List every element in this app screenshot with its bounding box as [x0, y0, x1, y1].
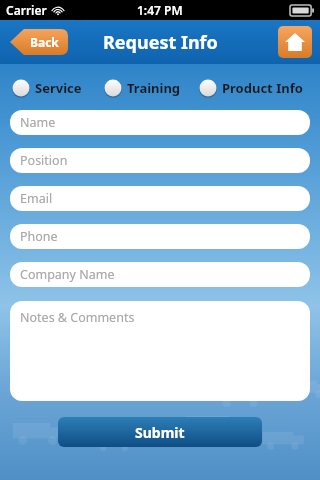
staticText: Product Info: [222, 79, 303, 97]
button[interactable]: Product Info: [199, 79, 303, 97]
button[interactable]: Position: [10, 148, 310, 173]
button[interactable]: Service: [12, 79, 82, 97]
staticText: Phone: [20, 228, 58, 245]
staticText: Submit: [135, 423, 185, 442]
button[interactable]: Submit: [58, 417, 262, 447]
staticText: Back: [30, 34, 59, 50]
button[interactable]: Company Name: [10, 262, 310, 287]
button[interactable]: Back: [10, 29, 68, 55]
button[interactable]: Training: [104, 79, 181, 97]
staticText: Email: [20, 190, 53, 207]
staticText: Service: [35, 79, 82, 97]
staticText: Notes & Comments: [20, 309, 135, 326]
staticText: Name: [20, 114, 56, 131]
button[interactable]: Notes & Comments: [10, 301, 310, 401]
staticText: Position: [20, 152, 68, 169]
staticText: Carrier: [6, 2, 47, 18]
staticText: Request Info: [103, 30, 218, 55]
staticText: Company Name: [20, 266, 115, 283]
button[interactable]: Phone: [10, 224, 310, 249]
staticText: Training: [127, 79, 181, 97]
button[interactable]: Home: [278, 26, 312, 58]
staticText: 1:47 PM: [137, 2, 183, 18]
button[interactable]: Name: [10, 110, 310, 135]
button[interactable]: Email: [10, 186, 310, 211]
